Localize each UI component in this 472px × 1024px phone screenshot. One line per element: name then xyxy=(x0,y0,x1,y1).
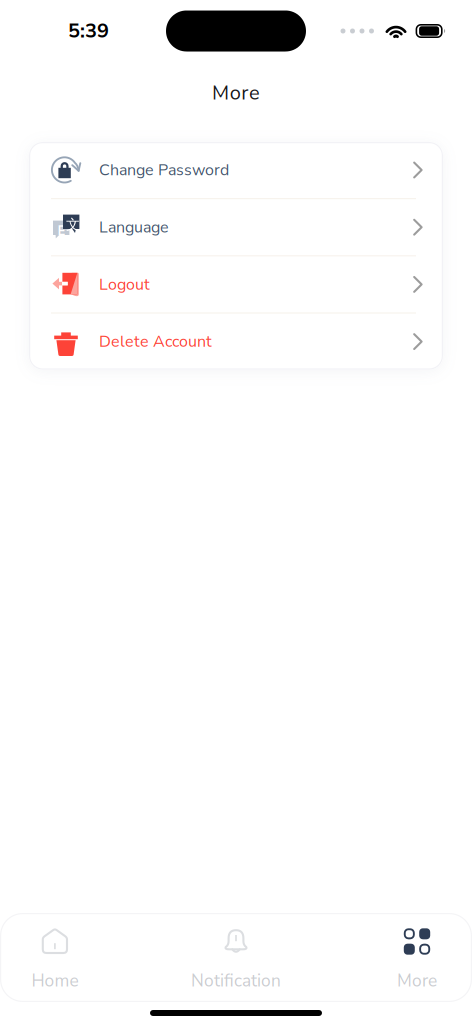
staticText: Delete Account xyxy=(99,331,212,352)
staticText: Logout xyxy=(99,273,150,295)
staticText: 5:39 xyxy=(68,17,109,45)
staticText: Home xyxy=(31,969,78,993)
staticText: Language xyxy=(99,216,169,238)
button[interactable]: Home xyxy=(0,913,110,1002)
staticText: 文 xyxy=(66,216,80,233)
button[interactable]: Change Password xyxy=(29,142,443,198)
button[interactable]: More xyxy=(362,913,472,1002)
button[interactable]: E xyxy=(29,199,443,255)
staticText: Change Password xyxy=(99,159,229,181)
staticText: More xyxy=(212,79,260,107)
staticText: E xyxy=(58,222,66,240)
button[interactable]: Notification xyxy=(181,913,291,1002)
staticText: Notification xyxy=(191,969,281,993)
button[interactable]: Logout xyxy=(29,256,443,312)
button[interactable]: Delete Account xyxy=(29,314,443,370)
staticText: More xyxy=(397,969,437,993)
